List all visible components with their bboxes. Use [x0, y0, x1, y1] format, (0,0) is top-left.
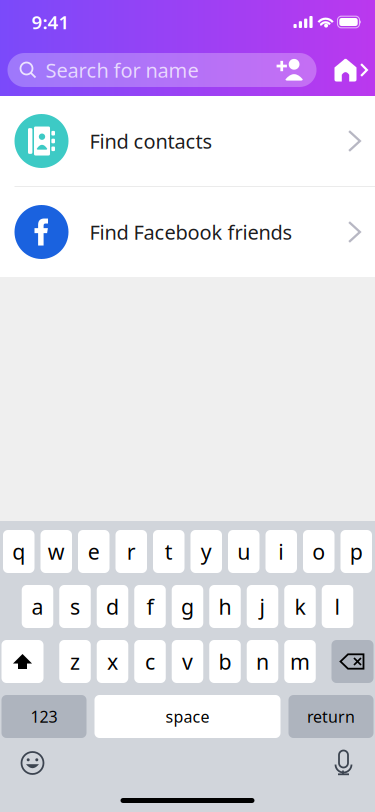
- button[interactable]: g: [172, 585, 203, 628]
- staticText: f: [146, 592, 153, 621]
- button[interactable]: j: [247, 585, 278, 628]
- staticText: h: [218, 592, 231, 621]
- staticText: w: [48, 537, 65, 566]
- staticText: a: [31, 592, 43, 621]
- button[interactable]: w: [40, 530, 72, 573]
- button[interactable]: z: [59, 640, 91, 683]
- button[interactable]: space: [94, 695, 280, 738]
- staticText: s: [70, 592, 80, 621]
- staticText: o: [312, 537, 325, 566]
- staticText: q: [12, 537, 25, 566]
- staticText: space: [165, 706, 209, 727]
- staticText: e: [88, 537, 100, 566]
- button[interactable]: Shift: [1, 640, 43, 683]
- button[interactable]: s: [59, 585, 91, 628]
- button[interactable]: return: [288, 695, 373, 738]
- button[interactable]: m: [284, 640, 316, 683]
- button[interactable]: v: [172, 640, 203, 683]
- button[interactable]: Find contacts: [0, 96, 375, 186]
- button[interactable]: o: [303, 530, 334, 573]
- button[interactable]: a: [22, 585, 53, 628]
- button[interactable]: h: [209, 585, 241, 628]
- button[interactable]: d: [97, 585, 128, 628]
- staticText: return: [307, 706, 355, 727]
- button[interactable]: Delete: [331, 640, 373, 683]
- staticText: Search for name: [45, 57, 198, 83]
- button[interactable]: b: [209, 640, 241, 683]
- staticText: v: [182, 647, 193, 676]
- button[interactable]: Search for name: [7, 53, 316, 87]
- button[interactable]: r: [115, 530, 147, 573]
- staticText: u: [237, 537, 250, 566]
- button[interactable]: i: [265, 530, 297, 573]
- button[interactable]: u: [228, 530, 259, 573]
- button[interactable]: Find Facebook friends: [0, 187, 375, 277]
- button[interactable]: Home: [334, 58, 375, 81]
- staticText: y: [201, 537, 212, 566]
- button[interactable]: l: [322, 585, 353, 628]
- staticText: l: [334, 592, 340, 621]
- button[interactable]: x: [97, 640, 128, 683]
- staticText: 9:41: [31, 10, 69, 34]
- button[interactable]: y: [190, 530, 222, 573]
- staticText: x: [107, 647, 118, 676]
- staticText: Find contacts: [89, 128, 212, 154]
- button[interactable]: k: [284, 585, 316, 628]
- staticText: d: [106, 592, 119, 621]
- button[interactable]: Emoji: [0, 750, 45, 776]
- button[interactable]: n: [247, 640, 278, 683]
- staticText: t: [165, 537, 173, 566]
- staticText: j: [259, 592, 265, 621]
- staticText: p: [350, 537, 363, 566]
- staticText: k: [294, 592, 305, 621]
- staticText: r: [127, 537, 136, 566]
- staticText: g: [181, 592, 194, 621]
- staticText: m: [290, 647, 310, 676]
- button[interactable]: t: [153, 530, 184, 573]
- staticText: z: [70, 647, 80, 676]
- button[interactable]: q: [3, 530, 34, 573]
- button[interactable]: p: [340, 530, 372, 573]
- button[interactable]: Dictate: [333, 749, 375, 777]
- button[interactable]: 123: [1, 695, 86, 738]
- button[interactable]: f: [134, 585, 166, 628]
- staticText: b: [218, 647, 231, 676]
- staticText: i: [278, 537, 284, 566]
- staticText: 123: [30, 706, 57, 727]
- staticText: Find Facebook friends: [89, 219, 292, 245]
- staticText: c: [145, 647, 155, 676]
- button[interactable]: e: [78, 530, 109, 573]
- button[interactable]: c: [134, 640, 166, 683]
- staticText: n: [256, 647, 269, 676]
